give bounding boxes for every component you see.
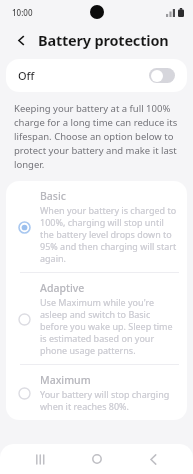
- staticText: Your battery will stop charging when it …: [40, 388, 177, 412]
- staticText: Maximum: [40, 373, 91, 387]
- staticText: 10:00: [12, 7, 33, 18]
- button[interactable]: Basic: [6, 181, 187, 272]
- button[interactable]: Adaptive: [6, 273, 187, 364]
- staticText: When your battery is charged to 100%, ch…: [40, 204, 177, 264]
- button[interactable]: Maximum: [6, 365, 187, 420]
- staticText: Battery protection: [38, 30, 169, 50]
- staticText: Use Maximum while you're asleep and swit…: [40, 296, 177, 356]
- staticText: Adaptive: [40, 281, 85, 295]
- staticText: Basic: [40, 189, 66, 203]
- staticText: Off: [18, 68, 149, 83]
- button[interactable]: Battery protection toggle, off: [149, 68, 175, 83]
- button[interactable]: Off: [6, 59, 187, 92]
- button[interactable]: Back: [136, 444, 170, 474]
- button[interactable]: Home: [80, 444, 114, 474]
- button[interactable]: Navigate up: [10, 29, 32, 51]
- staticText: Keeping your battery at a full 100% char…: [14, 102, 181, 171]
- button[interactable]: Recent apps: [23, 444, 57, 474]
